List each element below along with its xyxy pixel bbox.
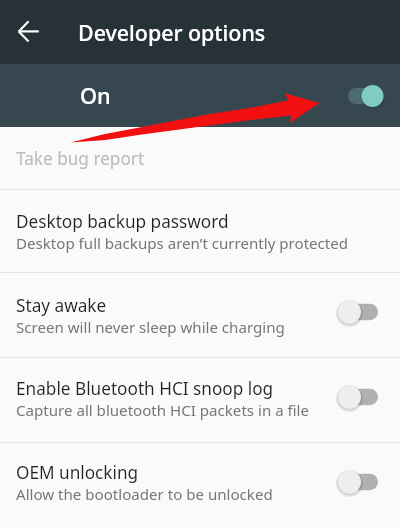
button[interactable]: Take bug report <box>0 127 400 189</box>
staticText: Desktop full backups aren’t currently pr… <box>16 233 349 254</box>
staticText: Enable Bluetooth HCI snoop log <box>16 377 274 400</box>
staticText: Desktop backup password <box>16 210 229 233</box>
button[interactable]: Enable Bluetooth HCI snoop log <box>0 358 400 442</box>
staticText: Stay awake <box>16 294 107 317</box>
staticText: Allow the bootloader to be unlocked <box>16 484 273 505</box>
staticText: Capture all bluetooth HCI packets in a f… <box>16 400 310 421</box>
button[interactable]: Back <box>0 0 62 64</box>
staticText: OEM unlocking <box>16 461 139 484</box>
staticText: Developer options <box>78 18 266 47</box>
button[interactable]: On <box>0 64 400 127</box>
staticText: On <box>80 81 111 111</box>
button[interactable]: Stay awake <box>0 273 400 357</box>
staticText: Take bug report <box>16 147 145 170</box>
button[interactable]: OEM unlocking <box>0 443 400 527</box>
button[interactable]: Desktop backup password <box>0 190 400 272</box>
staticText: Screen will never sleep while charging <box>16 317 285 338</box>
